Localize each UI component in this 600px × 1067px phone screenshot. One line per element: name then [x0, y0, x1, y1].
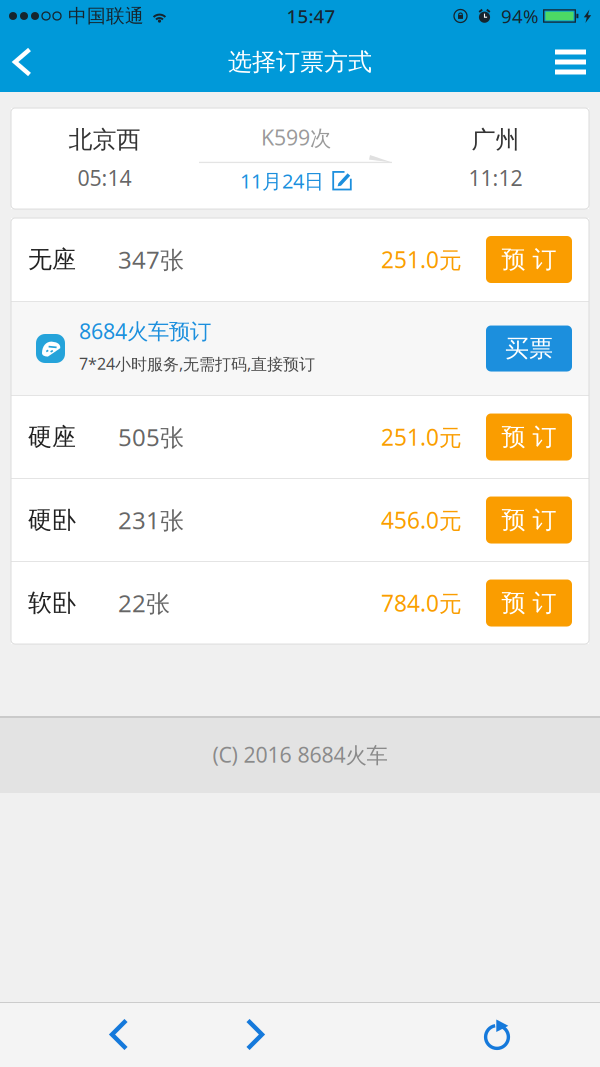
staticText: 预 订: [501, 245, 556, 274]
staticText: 广州: [471, 125, 519, 155]
staticText: K599次: [261, 123, 331, 151]
button[interactable]: Reload: [472, 1006, 526, 1062]
staticText: 买票: [505, 334, 553, 363]
staticText: (C) 2016 8684火车: [212, 740, 387, 769]
button[interactable]: 无座: [11, 218, 589, 301]
staticText: 软卧: [28, 588, 76, 618]
staticText: 231张: [118, 504, 184, 536]
button[interactable]: 硬卧: [11, 479, 589, 561]
button[interactable]: 11月24日: [240, 163, 352, 194]
staticText: 中国联通: [68, 4, 144, 27]
staticText: 22张: [118, 587, 170, 619]
staticText: 硬卧: [28, 505, 76, 535]
button[interactable]: 软卧: [11, 562, 589, 644]
staticText: 94%: [501, 4, 539, 28]
staticText: 北京西: [68, 125, 140, 155]
staticText: 选择订票方式: [228, 47, 372, 77]
staticText: 预 订: [501, 588, 556, 618]
staticText: 251.0元: [381, 422, 462, 452]
button[interactable]: 硬座: [11, 396, 589, 478]
staticText: 784.0元: [381, 588, 462, 618]
staticText: 预 订: [501, 505, 556, 535]
button[interactable]: 买票: [486, 325, 572, 371]
staticText: 7*24小时服务,无需打码,直接预订: [79, 353, 315, 374]
staticText: 347张: [118, 244, 184, 275]
staticText: 无座: [28, 245, 76, 274]
button[interactable]: Back: [94, 1005, 144, 1063]
staticText: 251.0元: [381, 244, 462, 274]
staticText: 505张: [118, 421, 184, 453]
button[interactable]: Back: [0, 32, 53, 92]
staticText: 456.0元: [381, 505, 462, 535]
staticText: 05:14: [77, 164, 131, 192]
button[interactable]: 8684火车预订: [28, 317, 315, 380]
staticText: 11:12: [468, 164, 522, 192]
staticText: 硬座: [28, 422, 76, 452]
staticText: 15:47: [286, 4, 335, 28]
staticText: 11月24日: [240, 167, 324, 194]
button[interactable]: Menu: [535, 32, 600, 92]
button[interactable]: Forward: [230, 1005, 280, 1063]
staticText: 8684火车预订: [79, 317, 211, 345]
staticText: 预 订: [501, 422, 556, 452]
